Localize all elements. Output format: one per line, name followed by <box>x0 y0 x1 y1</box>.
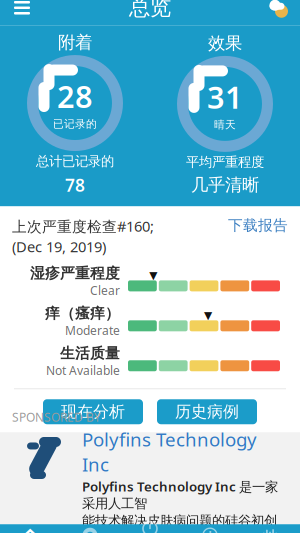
staticText: 78 <box>65 173 85 196</box>
staticText: Polyfins Technology Inc <box>82 427 257 477</box>
button[interactable]: 历史病例 <box>157 399 257 424</box>
staticText: ⌂ <box>20 520 39 533</box>
staticText: 晴天 <box>214 118 236 131</box>
staticText: ▼ <box>149 269 157 281</box>
staticText: 上次严重度检查#160; <box>12 216 154 236</box>
staticText: Moderate <box>65 322 120 338</box>
button[interactable]: 下载报告 <box>228 216 288 234</box>
staticText: (Dec 19, 2019) <box>12 237 106 256</box>
staticText: Not Available <box>46 362 120 378</box>
staticText: SPONSORED BY <box>12 409 101 425</box>
button[interactable]: 结论 <box>240 524 300 533</box>
button[interactable]: 现在分析 <box>43 399 143 424</box>
staticText: 附着 <box>58 32 92 53</box>
staticText: 几乎清晰 <box>191 174 259 196</box>
staticText: 下载报告 <box>228 216 288 234</box>
staticText: 已记录的 <box>53 117 97 130</box>
staticText: 28 <box>57 76 93 116</box>
button[interactable]: 分析 <box>60 524 120 533</box>
staticText: 总计已记录的 <box>36 153 114 169</box>
staticText: 效果 <box>208 33 242 54</box>
staticText: Clear <box>90 282 120 298</box>
staticText: 31 <box>207 76 243 117</box>
button[interactable]: 日常护理程序 <box>120 524 180 533</box>
staticText: ! <box>208 527 211 533</box>
staticText: 痒（瘙痒） <box>45 304 120 322</box>
staticText: ▼ <box>204 309 212 321</box>
staticText: 历史病例 <box>175 402 239 422</box>
staticText: 生活质量 <box>60 344 120 362</box>
staticText: 湿疹严重程度 <box>30 264 120 282</box>
staticText: 平均严重程度 <box>186 154 264 170</box>
button[interactable]: Menu <box>0 0 44 25</box>
staticText: Polyfins Technology Inc 是一家采用人工智 <box>82 478 278 512</box>
staticText: 能技术解决皮肤病问题的硅谷初创公司 <box>82 513 277 533</box>
button[interactable]: ! <box>180 524 240 533</box>
button[interactable]: Weather <box>256 0 300 25</box>
button[interactable]: ⌂ <box>0 524 60 533</box>
staticText: 现在分析 <box>61 402 125 422</box>
staticText: 总览 <box>129 0 171 21</box>
